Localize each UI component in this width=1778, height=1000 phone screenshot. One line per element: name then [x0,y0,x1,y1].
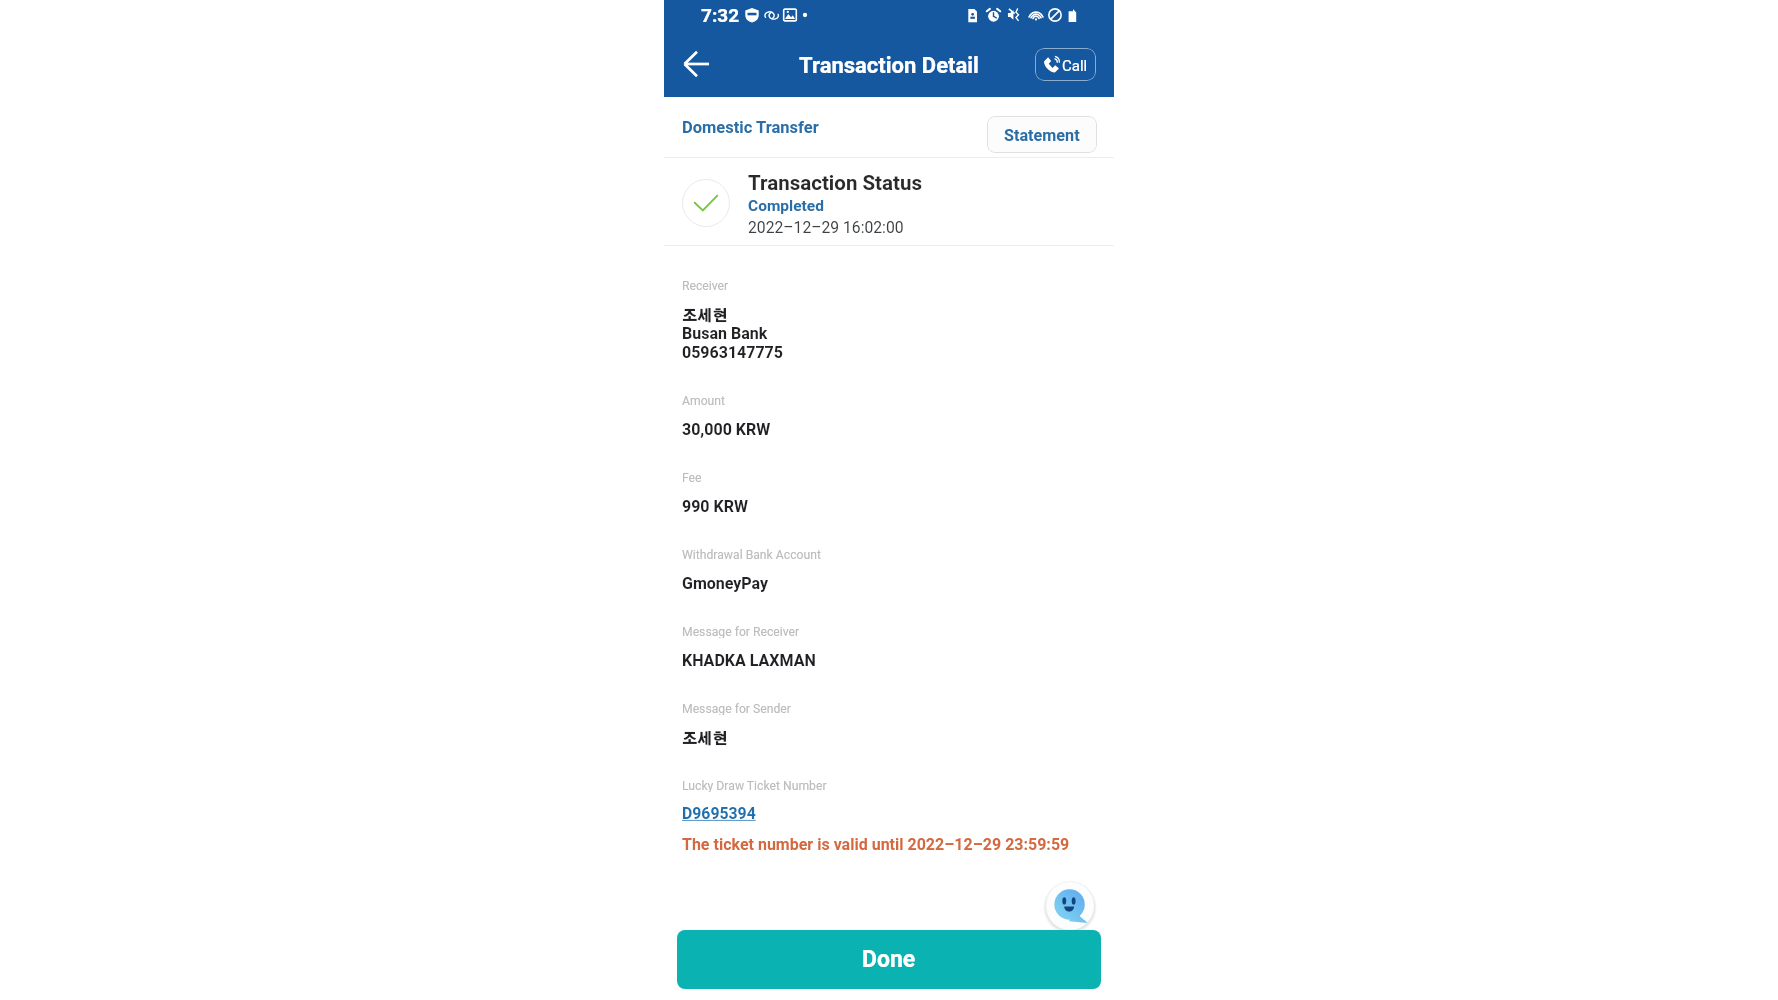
staticText: 조세현 [682,732,728,747]
staticText: Withdrawal Bank Account [682,548,821,561]
staticText: Lucky Draw Ticket Number [682,779,827,792]
staticText: Transaction Detail [799,53,979,79]
staticText: KHADKA LAXMAN [682,651,816,670]
staticText: Busan Bank [682,324,768,343]
staticText: The ticket number is valid until 2022–12… [682,835,1070,854]
staticText: 05963147775 [682,343,783,362]
staticText: Transaction Status [748,171,922,195]
button[interactable]: Done [677,930,1101,989]
staticText: GmoneyPay [682,574,769,593]
staticText: Message for Receiver [682,625,800,638]
staticText: 7:32 [701,4,740,26]
staticText: Completed [748,197,824,215]
button[interactable]: Back [676,44,716,84]
staticText: Message for Sender [682,702,791,715]
staticText: Call [1062,57,1088,75]
staticText: 30,000 KRW [682,420,771,439]
staticText: Statement [1004,126,1080,145]
button[interactable]: Chat support [1046,882,1094,930]
staticText: Done [862,946,916,973]
button[interactable]: D9695394 [682,804,758,823]
staticText: 990 KRW [682,497,748,516]
staticText: 2022–12–29 16:02:00 [748,218,904,236]
staticText: Fee [682,471,702,484]
staticText: Amount [682,394,726,407]
button[interactable]: Statement [987,116,1097,153]
button[interactable]: Call [1035,48,1096,81]
staticText: 조세현 [682,309,728,324]
staticText: Domestic Transfer [682,118,819,137]
staticText: Receiver [682,279,729,292]
